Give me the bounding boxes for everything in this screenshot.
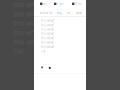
staticText: this what? [13, 37, 44, 46]
staticText: this what? [41, 36, 54, 40]
staticText: Cat [13, 47, 23, 56]
button[interactable]: Page [54, 2, 64, 5]
staticText: more [67, 11, 72, 15]
staticText: this what? [13, 28, 44, 37]
button[interactable]: more [67, 11, 72, 14]
staticText: this what? [41, 23, 54, 27]
staticText: Cat [41, 49, 45, 53]
staticText: select language [40, 11, 53, 15]
button[interactable]: English [57, 11, 64, 14]
button[interactable]: select language [40, 11, 53, 14]
staticText: this what? [13, 0, 44, 9]
staticText: this what? [41, 45, 54, 49]
staticText: English [57, 11, 64, 15]
button[interactable]: Bookmark [41, 66, 43, 68]
button[interactable]: Comment [49, 67, 51, 69]
staticText: Share [75, 2, 82, 5]
staticText: this what? [41, 41, 54, 44]
staticText: Me [43, 2, 47, 5]
button[interactable]: Me [40, 2, 47, 5]
staticText: this what? [41, 28, 54, 31]
button[interactable]: Share [72, 2, 82, 5]
staticText: Page [57, 2, 64, 5]
staticText: this what? [13, 19, 44, 28]
staticText: Span [76, 11, 82, 15]
staticText: this what? [13, 9, 44, 18]
staticText: this what? [41, 19, 54, 22]
staticText: this what? [41, 32, 54, 36]
button[interactable]: Span [76, 11, 82, 14]
